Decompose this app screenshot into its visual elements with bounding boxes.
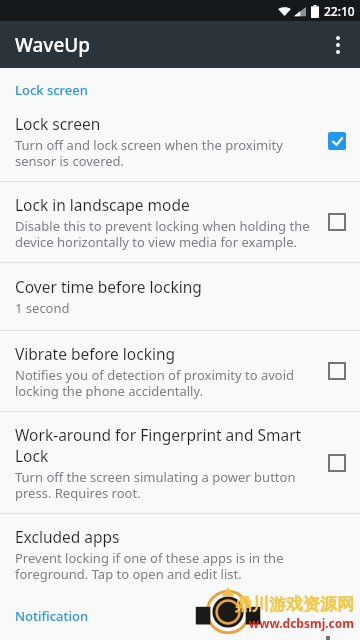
button[interactable]: Vibrate before locking: [0, 331, 360, 411]
button[interactable]: Excluded apps: [0, 514, 360, 594]
staticText: Notifies you of detection of proximity t…: [15, 366, 318, 399]
staticText: 1 second: [15, 299, 70, 317]
button[interactable]: Cover time before locking: [0, 263, 360, 330]
staticText: Lock in landscape mode: [15, 194, 190, 215]
staticText: www.dcbsmj.com: [230, 615, 354, 631]
staticText: Prevent locking if one of these apps is …: [15, 549, 346, 582]
staticText: 22:10: [324, 3, 355, 19]
button[interactable]: Lock in landscape mode: [0, 182, 360, 262]
button[interactable]: More options: [316, 21, 360, 68]
button[interactable]: Show notification: [0, 629, 360, 640]
staticText: Cover time before locking: [15, 276, 202, 297]
staticText: WaveUp: [15, 32, 91, 58]
staticText: Turn off the screen simulating a power b…: [15, 468, 318, 501]
staticText: Work-around for Fingerprint and Smart Lo…: [15, 424, 318, 466]
staticText: 鼎川游戏资源网: [230, 594, 354, 615]
staticText: Excluded apps: [15, 526, 120, 547]
staticText: Turn off and lock screen when the proxim…: [15, 136, 318, 169]
button[interactable]: Work-around for Fingerprint and Smart Lo…: [0, 412, 360, 513]
staticText: Disable this to prevent locking when hol…: [15, 217, 318, 250]
button[interactable]: Lock screen: [0, 103, 360, 181]
staticText: Lock screen: [15, 113, 101, 134]
staticText: Lock screen: [15, 81, 88, 99]
staticText: Notification: [15, 607, 89, 625]
staticText: Vibrate before locking: [15, 343, 176, 364]
